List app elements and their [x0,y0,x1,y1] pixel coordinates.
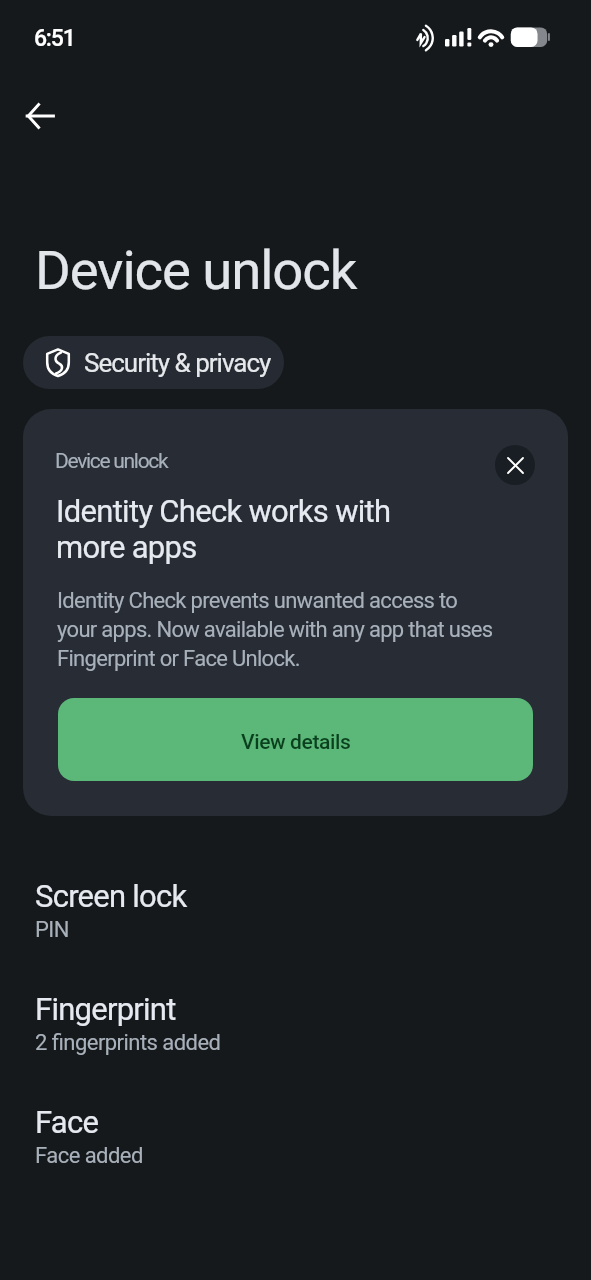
staticText: View details [241,730,351,755]
staticText: Screen lock [35,878,187,914]
staticText: Device unlock [55,449,168,474]
staticText: Face added [35,1143,143,1169]
staticText: Identity Check works with more apps [56,493,391,565]
button[interactable]: Face [0,1082,591,1194]
staticText: Device unlock [35,238,357,302]
staticText: Identity Check prevents unwanted access … [57,588,493,671]
button[interactable]: Security & privacy [23,336,284,389]
staticText: 2 fingerprints added [35,1030,221,1056]
button[interactable]: Screen lock [0,856,591,968]
button[interactable]: View details [58,698,533,781]
button[interactable]: Fingerprint [0,969,591,1081]
button[interactable]: Back [16,92,64,140]
staticText: Fingerprint [35,991,176,1027]
staticText: Face [35,1104,99,1140]
button[interactable]: Dismiss [495,445,535,485]
staticText: Security & privacy [84,348,271,378]
staticText: PIN [35,917,69,943]
staticText: 6:51 [34,25,75,52]
